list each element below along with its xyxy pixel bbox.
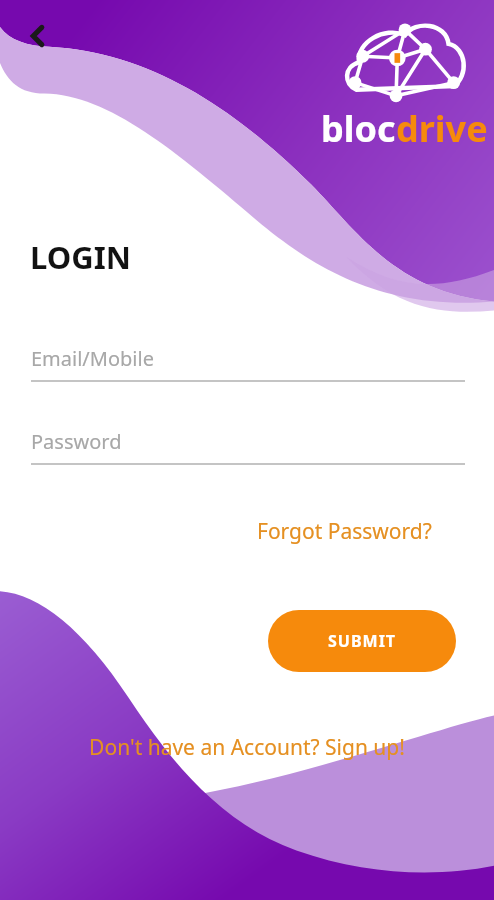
staticText: bloc <box>321 104 396 153</box>
button[interactable]: Forgot Password? <box>255 515 434 548</box>
button[interactable]: Back <box>14 12 62 60</box>
button[interactable]: Password <box>31 428 465 465</box>
staticText: SUBMIT <box>328 630 397 652</box>
button[interactable]: SUBMIT <box>268 610 456 672</box>
staticText: Forgot Password? <box>257 517 432 546</box>
staticText: drive <box>396 104 488 153</box>
staticText: Password <box>31 428 122 455</box>
button[interactable]: Email/Mobile <box>31 345 465 382</box>
staticText: Email/Mobile <box>31 345 154 372</box>
staticText: Don't have an Account? Sign up! <box>89 733 405 762</box>
button[interactable]: Don't have an Account? Sign up! <box>0 733 494 762</box>
staticText: LOGIN <box>30 236 131 278</box>
